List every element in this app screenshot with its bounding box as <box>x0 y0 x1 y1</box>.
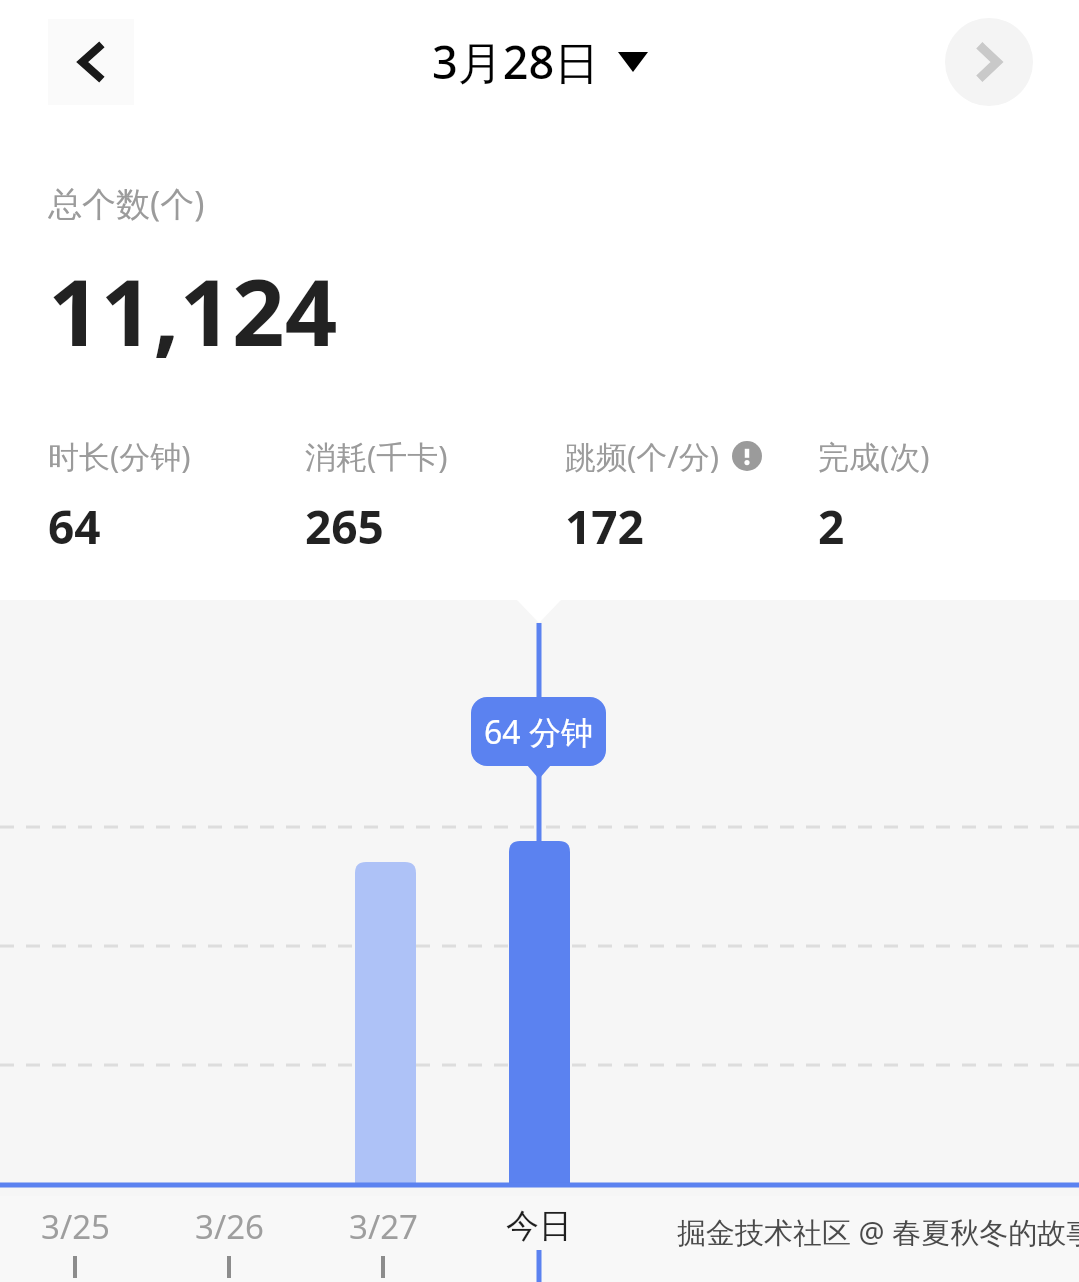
staticText: 11,124 <box>48 248 338 373</box>
button[interactable]: 完成(次) <box>818 435 930 558</box>
staticText: 时长(分钟) <box>48 435 191 477</box>
staticText: 3/25 <box>41 1204 110 1249</box>
staticText: 2 <box>818 495 845 558</box>
button[interactable]: 3/26 <box>169 1200 289 1252</box>
button[interactable]: 今日 <box>479 1200 599 1252</box>
staticText: 3/27 <box>349 1204 418 1249</box>
button[interactable]: 3月28日 <box>432 31 648 92</box>
staticText: 3/26 <box>195 1204 264 1249</box>
button[interactable]: 3/25 <box>15 1200 135 1252</box>
button[interactable]: 跳频(个/分) <box>565 435 762 558</box>
staticText: 172 <box>565 495 644 558</box>
staticText: 64 分钟 <box>484 710 593 754</box>
staticText: 消耗(千卡) <box>305 435 448 477</box>
staticText: 265 <box>305 495 384 558</box>
staticText: 跳频(个/分) <box>565 435 720 477</box>
staticText: 总个数(个) <box>48 180 205 226</box>
staticText: 64 <box>48 495 101 558</box>
button[interactable]: 64 分钟 <box>471 697 606 766</box>
staticText: 完成(次) <box>818 435 930 477</box>
staticText: 掘金技术社区 @ 春夏秋冬的故事 <box>677 1212 1079 1252</box>
staticText: 3月28日 <box>432 31 600 92</box>
button[interactable]: 消耗(千卡) <box>305 435 448 558</box>
button[interactable]: 返回 <box>48 19 134 105</box>
staticText: 今日 <box>506 1205 572 1247</box>
button[interactable]: 3/27 <box>323 1200 443 1252</box>
button[interactable]: 下一天 <box>945 18 1033 106</box>
button[interactable]: 时长(分钟) <box>48 435 191 558</box>
